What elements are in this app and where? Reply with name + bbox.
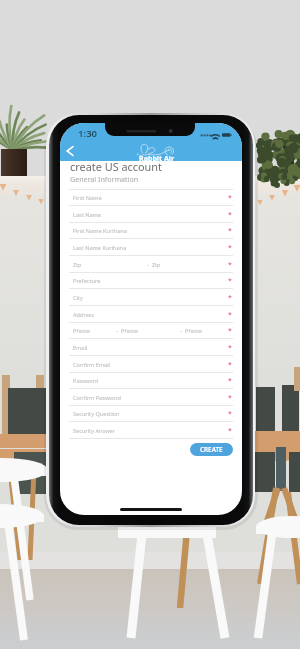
staticText: Rabbit Air — [139, 153, 175, 163]
staticText: Security Answer — [73, 427, 116, 435]
staticText: Last Name Kurihana — [73, 244, 127, 252]
button[interactable]: Confirm Password — [69, 389, 233, 406]
staticText: - — [116, 327, 118, 335]
button[interactable]: Address — [69, 306, 233, 323]
button[interactable]: Last Name Kurihana — [69, 239, 233, 256]
button[interactable]: City — [69, 289, 233, 306]
staticText: * — [228, 343, 232, 353]
button[interactable]: First Name — [69, 189, 233, 206]
staticText: create US account — [70, 159, 162, 174]
staticText: Email — [73, 344, 88, 352]
staticText: * — [228, 293, 232, 303]
button[interactable]: Security Question — [69, 405, 233, 422]
button[interactable]: Zip — [69, 256, 233, 273]
staticText: Last Name — [73, 211, 101, 219]
staticText: First Name — [73, 194, 102, 202]
staticText: - — [180, 327, 182, 335]
button[interactable]: Last Name — [69, 206, 233, 223]
button[interactable]: Email — [69, 339, 233, 356]
staticText: Confirm Password — [73, 394, 122, 402]
staticText: * — [228, 260, 232, 270]
staticText: Phone — [121, 327, 138, 335]
staticText: City — [73, 294, 83, 302]
staticText: * — [228, 276, 232, 286]
button[interactable]: Security Answer — [69, 422, 233, 439]
staticText: Address — [73, 311, 95, 319]
staticText: Password — [73, 377, 99, 385]
staticText: First Name Kurihana — [73, 227, 127, 235]
staticText: Prefecture — [73, 277, 101, 285]
button[interactable]: Password — [69, 372, 233, 389]
staticText: * — [228, 243, 232, 253]
button[interactable]: Phone — [69, 322, 233, 339]
staticText: * — [228, 360, 232, 370]
staticText: * — [228, 226, 232, 236]
staticText: Phone — [185, 327, 202, 335]
staticText: * — [228, 426, 232, 436]
staticText: General Information — [70, 174, 139, 184]
button[interactable]: Prefecture — [69, 272, 233, 289]
button[interactable]: Confirm Email — [69, 356, 233, 373]
button[interactable]: Back — [63, 144, 76, 158]
staticText: - — [147, 261, 149, 269]
staticText: 1:30 — [78, 127, 98, 140]
button[interactable]: CREATE — [190, 443, 233, 456]
button[interactable]: First Name Kurihana — [69, 222, 233, 239]
staticText: CREATE — [200, 445, 223, 454]
staticText: * — [228, 310, 232, 320]
staticText: Phone — [73, 327, 90, 335]
staticText: * — [228, 210, 232, 220]
staticText: * — [228, 376, 232, 386]
staticText: * — [228, 393, 232, 403]
staticText: Confirm Email — [73, 361, 111, 369]
staticText: Zip — [73, 261, 82, 269]
staticText: * — [228, 326, 232, 336]
staticText: Zip — [152, 261, 161, 269]
staticText: * — [228, 193, 232, 203]
staticText: Security Question — [73, 410, 120, 418]
staticText: * — [228, 409, 232, 419]
